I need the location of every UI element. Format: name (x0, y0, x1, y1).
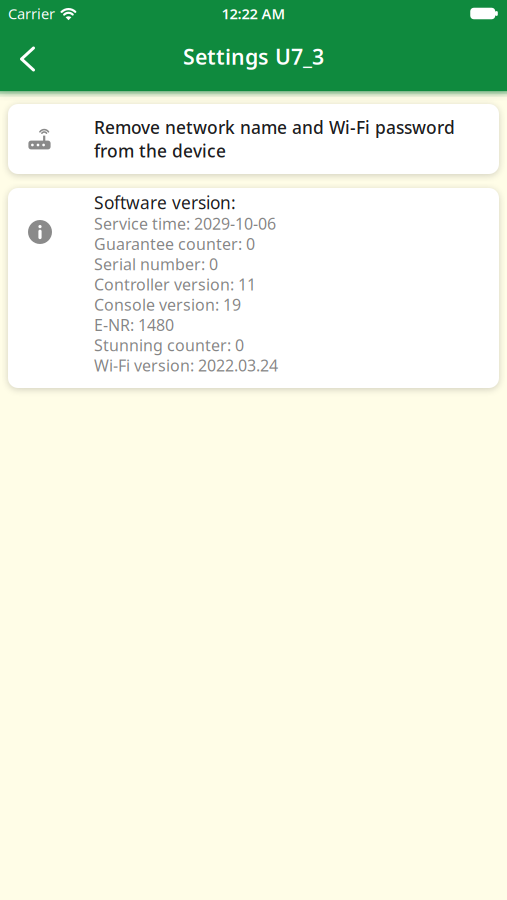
button[interactable]: Back (0, 27, 51, 91)
staticText: Remove network name and Wi-Fi password f… (94, 116, 455, 162)
staticText: E-NR: 1480 (94, 314, 174, 335)
staticText: Settings U7_3 (183, 42, 324, 71)
staticText: Carrier (8, 4, 55, 23)
staticText: Controller version: 11 (94, 274, 256, 295)
button[interactable]: Remove network name and Wi-Fi password f… (8, 104, 499, 174)
staticText: Service time: 2029-10-06 (94, 213, 276, 234)
staticText: Console version: 19 (94, 294, 241, 315)
staticText: Wi-Fi version: 2022.03.24 (94, 355, 278, 376)
staticText: Software version: (94, 191, 236, 214)
staticText: 12:22 AM (221, 4, 285, 23)
staticText: Guarantee counter: 0 (94, 233, 255, 254)
staticText: Serial number: 0 (94, 253, 218, 275)
staticText: Stunning counter: 0 (94, 334, 244, 356)
